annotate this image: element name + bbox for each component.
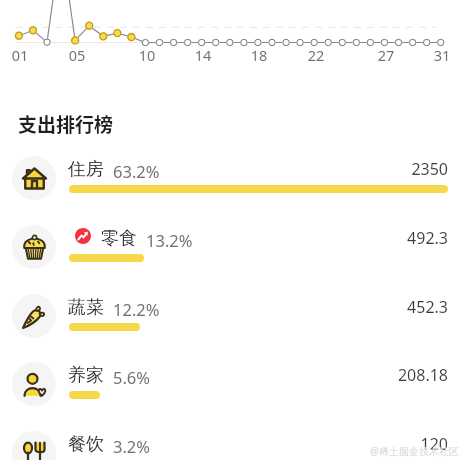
staticText: 14	[189, 45, 217, 65]
staticText: 208.18	[0, 364, 448, 386]
staticText: 12.2%	[113, 298, 160, 320]
staticText: 餐饮	[68, 433, 104, 456]
staticText: 05	[63, 45, 91, 65]
staticText: 120	[0, 433, 448, 455]
staticText: 31	[428, 45, 456, 65]
staticText: 492.3	[0, 227, 448, 249]
staticText: @稀土掘金技术社区	[370, 444, 459, 458]
staticText: 10	[133, 45, 161, 65]
staticText: 住房	[68, 158, 104, 181]
button[interactable]: 餐饮	[0, 420, 460, 460]
staticText: 27	[372, 45, 400, 65]
staticText: 18	[245, 45, 273, 65]
staticText: 3.2%	[113, 435, 151, 457]
staticText: 5.6%	[113, 366, 151, 388]
staticText: 养家	[68, 364, 104, 387]
staticText: 零食	[101, 227, 137, 250]
staticText: 2350	[0, 158, 448, 180]
button[interactable]: 住房	[0, 145, 460, 213]
button[interactable]: 零食	[0, 214, 460, 282]
staticText: 01	[6, 45, 34, 65]
staticText: 22	[302, 45, 330, 65]
staticText: 13.2%	[146, 229, 193, 251]
button[interactable]: 蔬菜	[0, 283, 460, 351]
staticText: 支出排行榜	[18, 110, 114, 138]
staticText: 蔬菜	[68, 296, 104, 319]
staticText: 63.2%	[113, 160, 160, 182]
button[interactable]: 养家	[0, 351, 460, 419]
staticText: 452.3	[0, 296, 448, 318]
